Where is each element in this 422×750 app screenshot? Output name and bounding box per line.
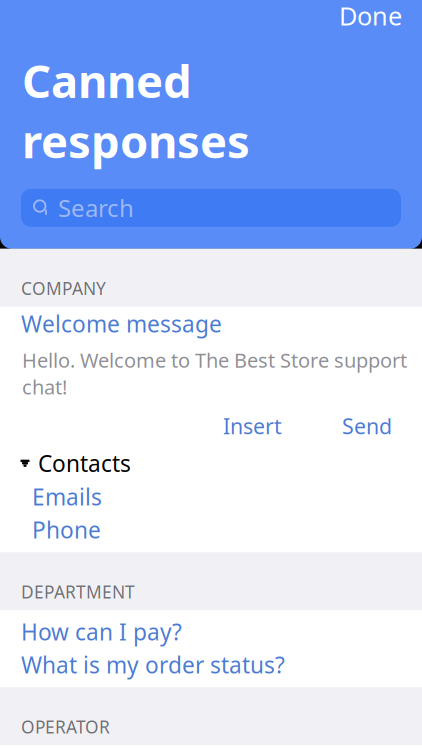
- button[interactable]: Search: [21, 189, 401, 227]
- staticText: What is my order status?: [21, 650, 285, 680]
- staticText: Phone: [32, 515, 101, 545]
- button[interactable]: Emails: [0, 480, 422, 513]
- staticText: Send: [342, 412, 392, 440]
- staticText: OPERATOR: [21, 715, 110, 738]
- staticText: Hello. Welcome to The Best Store support…: [22, 347, 407, 400]
- staticText: How can I pay?: [21, 617, 182, 647]
- button[interactable]: Contacts: [0, 446, 422, 480]
- staticText: Emails: [32, 482, 102, 512]
- button[interactable]: Phone: [0, 513, 422, 546]
- button[interactable]: What is my order status?: [0, 648, 422, 681]
- button[interactable]: How can I pay?: [0, 615, 422, 648]
- button[interactable]: Send: [332, 406, 402, 446]
- staticText: DEPARTMENT: [21, 580, 135, 603]
- staticText: Contacts: [38, 448, 131, 478]
- button[interactable]: Welcome message: [0, 307, 422, 341]
- staticText: Welcome message: [21, 309, 222, 339]
- staticText: Search: [58, 192, 134, 224]
- staticText: Insert: [223, 412, 282, 440]
- staticText: Done: [339, 0, 402, 32]
- staticText: Canned responses: [22, 50, 250, 171]
- button[interactable]: Done: [331, 0, 410, 38]
- staticText: COMPANY: [21, 277, 106, 300]
- button[interactable]: Insert: [213, 406, 292, 446]
